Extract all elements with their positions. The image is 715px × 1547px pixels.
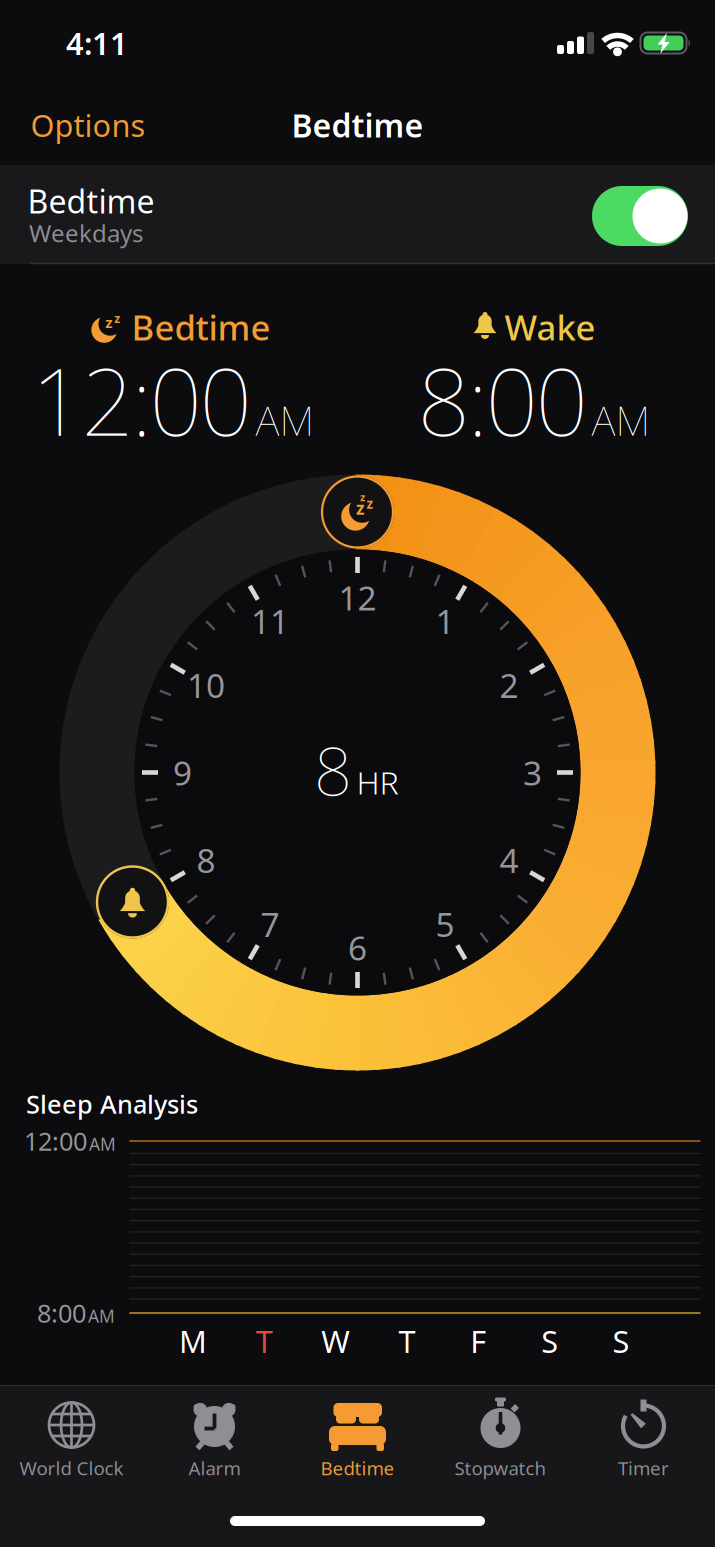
staticText: 4 (500, 838, 519, 882)
staticText: 5 (435, 902, 454, 946)
button[interactable]: Stopwatch (429, 1389, 572, 1484)
staticText: 3 (523, 750, 542, 795)
staticText: Weekdays (29, 217, 143, 249)
staticText: 2 (500, 663, 519, 707)
staticText: Bedtime (291, 104, 423, 146)
staticText: Wake (504, 304, 595, 350)
staticText: Timer (618, 1456, 669, 1480)
staticText: Options (30, 105, 145, 145)
staticText: Alarm (188, 1456, 240, 1480)
staticText: F (470, 1321, 486, 1361)
staticText: T (256, 1321, 273, 1361)
staticText: S (541, 1321, 558, 1361)
staticText: z (366, 495, 373, 512)
staticText: 12:00 (31, 339, 251, 461)
staticText: 7 (260, 902, 279, 946)
staticText: HR (356, 761, 398, 803)
staticText: 8:00 (417, 339, 587, 461)
staticText: z (356, 496, 365, 519)
staticText: Sleep Analysis (26, 1087, 198, 1121)
button[interactable]: World Clock (0, 1389, 143, 1484)
staticText: z (360, 490, 365, 504)
staticText: S (612, 1321, 629, 1361)
staticText: AM (89, 1133, 116, 1156)
staticText: AM (88, 1305, 115, 1328)
staticText: 11 (251, 599, 289, 643)
staticText: AM (591, 392, 650, 447)
staticText: 8 (314, 726, 352, 814)
button[interactable]: Alarm (143, 1389, 286, 1484)
staticText: 12:00 (24, 1124, 87, 1158)
staticText: 4:11 (66, 23, 128, 63)
staticText: 6 (348, 925, 367, 970)
staticText: z (105, 313, 112, 332)
staticText: Bedtime (27, 180, 154, 222)
staticText: 10 (187, 663, 225, 707)
staticText: 8 (196, 838, 215, 882)
staticText: 12 (338, 575, 376, 620)
staticText: 1 (435, 599, 454, 643)
staticText: AM (255, 392, 314, 447)
staticText: 8:00 (37, 1296, 86, 1330)
staticText: Stopwatch (454, 1456, 546, 1480)
staticText: 9 (173, 750, 192, 795)
button[interactable]: Bedtime (286, 1389, 429, 1484)
staticText: M (179, 1321, 207, 1361)
button[interactable]: Timer (572, 1389, 715, 1484)
staticText: z (114, 310, 120, 326)
staticText: Bedtime (131, 304, 270, 350)
staticText: World Clock (19, 1456, 123, 1480)
button[interactable]: Options (30, 105, 145, 145)
staticText: T (398, 1321, 415, 1361)
button[interactable]: Bedtime enabled (592, 186, 688, 246)
staticText: Bedtime (320, 1456, 394, 1480)
staticText: W (321, 1321, 350, 1361)
